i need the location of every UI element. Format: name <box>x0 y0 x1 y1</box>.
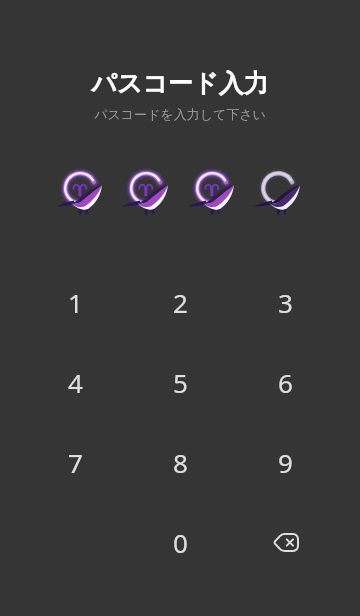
button[interactable]: 8 <box>128 422 233 502</box>
button[interactable]: 7 <box>23 422 128 502</box>
button[interactable]: 5 <box>128 342 233 422</box>
button[interactable]: 4 <box>23 342 128 422</box>
staticText: 4 <box>68 365 83 400</box>
button[interactable]: 0 <box>128 502 233 582</box>
other: Delete <box>273 533 299 552</box>
staticText: 0 <box>173 525 188 560</box>
staticText: 5 <box>173 365 188 400</box>
button[interactable]: 1 <box>23 262 128 342</box>
staticText: 7 <box>68 445 83 480</box>
button[interactable]: 2 <box>128 262 233 342</box>
staticText: パスコード入力 <box>91 68 269 99</box>
staticText: パスコードを入力して下さい <box>94 106 266 122</box>
staticText: 8 <box>173 445 188 480</box>
button[interactable]: 9 <box>233 422 338 502</box>
staticText: 2 <box>173 285 188 320</box>
button[interactable]: 6 <box>233 342 338 422</box>
staticText: 6 <box>278 365 293 400</box>
button[interactable]: Delete <box>233 502 338 582</box>
staticText: 3 <box>278 285 293 320</box>
staticText: 1 <box>68 285 83 320</box>
staticText: 9 <box>278 445 293 480</box>
button[interactable]: 3 <box>233 262 338 342</box>
